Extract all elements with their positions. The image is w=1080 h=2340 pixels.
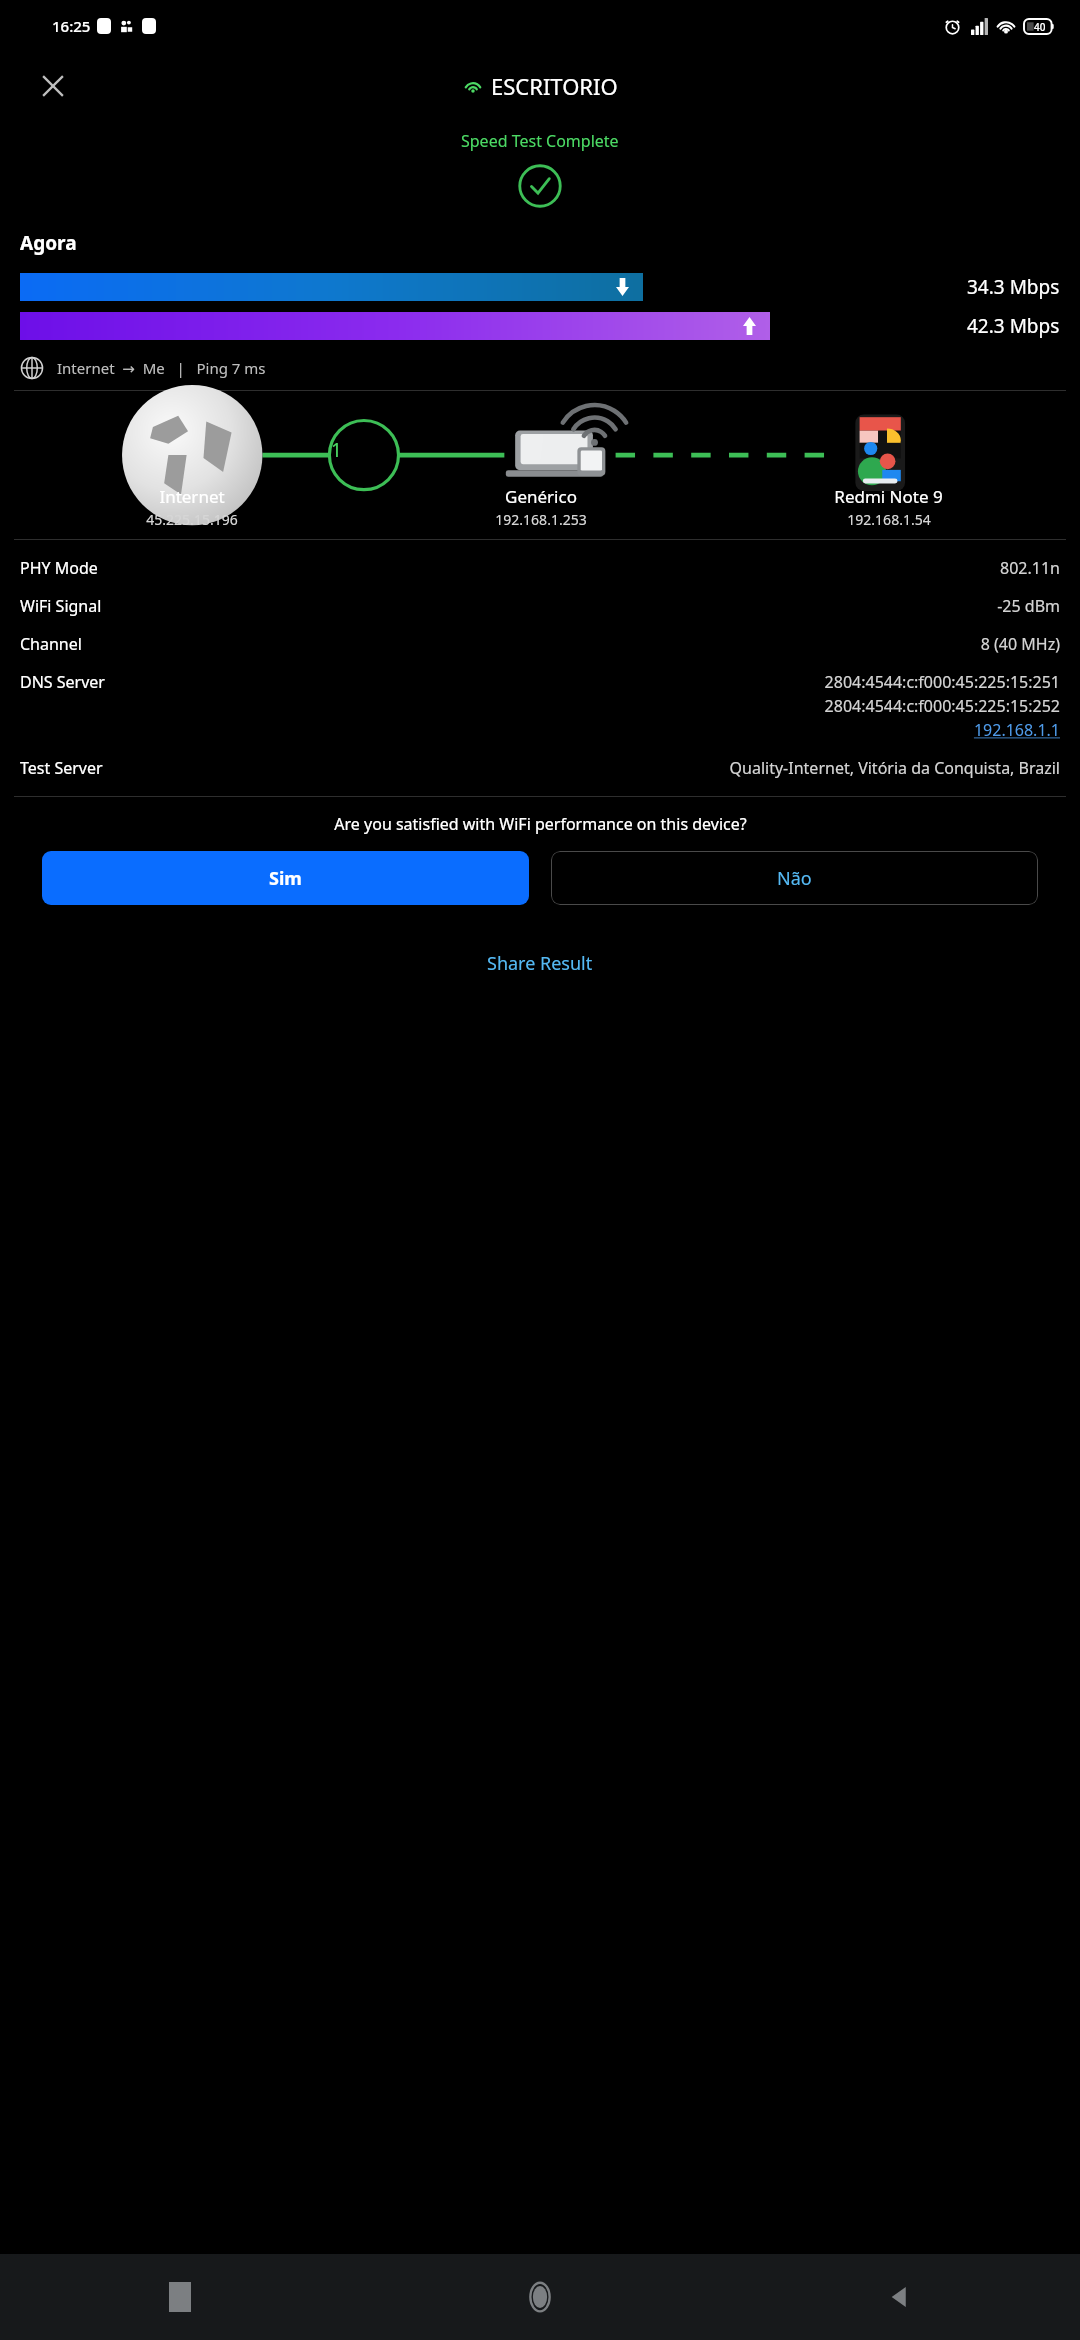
staticText: 192.168.1.1 xyxy=(973,719,1060,741)
staticText: Internet xyxy=(159,485,225,508)
staticText: Quality-Internet, Vitória da Conquista, … xyxy=(729,757,1060,779)
staticText: Agora xyxy=(20,230,77,256)
staticText: 2804:4544:c:f000:45:225:15:252 xyxy=(824,695,1060,717)
staticText: 16:25 xyxy=(52,16,91,36)
staticText: -25 dBm xyxy=(997,595,1060,617)
staticText: 45.225.15.196 xyxy=(146,510,238,529)
staticText: DNS Server xyxy=(20,671,824,693)
button[interactable]: Back xyxy=(720,2254,1080,2340)
staticText: 1 xyxy=(331,437,342,463)
staticText: Channel xyxy=(20,633,980,655)
staticText: 34.3 Mbps xyxy=(967,274,1060,300)
staticText: Are you satisfied with WiFi performance … xyxy=(334,813,747,835)
button[interactable]: Share Result xyxy=(467,943,613,984)
button[interactable]: Home xyxy=(360,2254,720,2340)
staticText: Sim xyxy=(269,866,302,891)
button[interactable]: Sim xyxy=(42,851,529,905)
staticText: Internet → Me | Ping 7 ms xyxy=(57,358,266,378)
button[interactable]: Close xyxy=(30,63,76,109)
button[interactable]: Não xyxy=(551,851,1038,905)
staticText: Speed Test Complete xyxy=(461,130,619,152)
button[interactable]: Internet xyxy=(0,485,384,529)
staticText: 42.3 Mbps xyxy=(967,313,1060,339)
staticText: 802.11n xyxy=(1000,557,1060,579)
staticText: Redmi Note 9 xyxy=(834,485,943,508)
staticText: Não xyxy=(777,866,812,891)
staticText: PHY Mode xyxy=(20,557,1000,579)
button[interactable]: Genérico xyxy=(384,485,697,529)
staticText: Share Result xyxy=(487,951,593,976)
staticText: 40 xyxy=(1034,20,1046,34)
button[interactable]: WiFi Signal xyxy=(20,588,1060,626)
staticText: 8 (40 MHz) xyxy=(980,633,1060,655)
staticText: Test Server xyxy=(20,757,729,779)
staticText: ESCRITORIO xyxy=(491,71,618,101)
button[interactable]: Test Server xyxy=(20,750,1060,788)
button[interactable]: Recent apps xyxy=(0,2254,360,2340)
staticText: Genérico xyxy=(505,485,577,508)
button[interactable]: Channel xyxy=(20,626,1060,664)
button[interactable]: DNS Server xyxy=(20,664,1060,750)
staticText: 192.168.1.54 xyxy=(847,510,931,529)
button[interactable]: Redmi Note 9 xyxy=(697,485,1080,529)
staticText: WiFi Signal xyxy=(20,595,997,617)
staticText: 192.168.1.253 xyxy=(495,510,587,529)
staticText: 2804:4544:c:f000:45:225:15:251 xyxy=(824,671,1060,693)
button[interactable]: PHY Mode xyxy=(20,550,1060,588)
